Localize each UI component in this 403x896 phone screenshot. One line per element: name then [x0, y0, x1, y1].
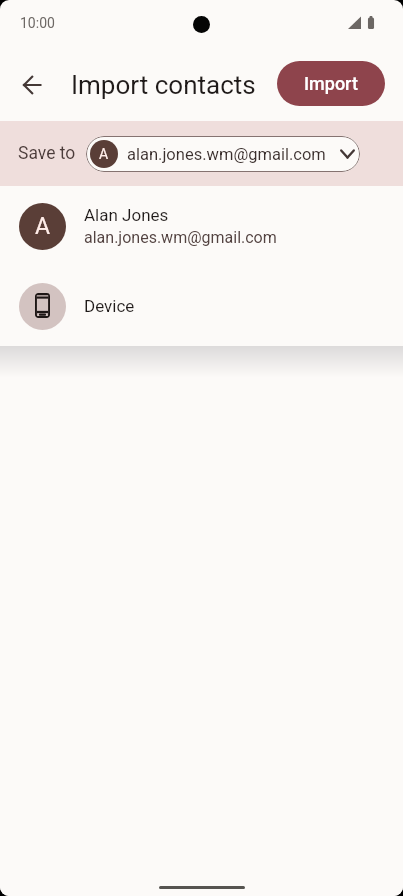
button[interactable]: Device: [0, 266, 403, 346]
staticText: Save to: [18, 143, 76, 164]
button[interactable]: A: [0, 186, 403, 266]
button[interactable]: Back: [9, 61, 57, 109]
button[interactable]: Import: [277, 61, 385, 106]
staticText: alan.jones.wm@gmail.com: [84, 228, 277, 247]
staticText: Device: [84, 296, 135, 316]
staticText: A: [99, 146, 109, 162]
staticText: A: [35, 213, 51, 240]
staticText: Import contacts: [71, 70, 256, 100]
staticText: 10:00: [20, 15, 55, 31]
staticText: Alan Jones: [84, 205, 169, 225]
staticText: Import: [304, 73, 358, 94]
button[interactable]: A: [86, 136, 360, 172]
staticText: alan.jones.wm@gmail.com: [127, 145, 326, 164]
